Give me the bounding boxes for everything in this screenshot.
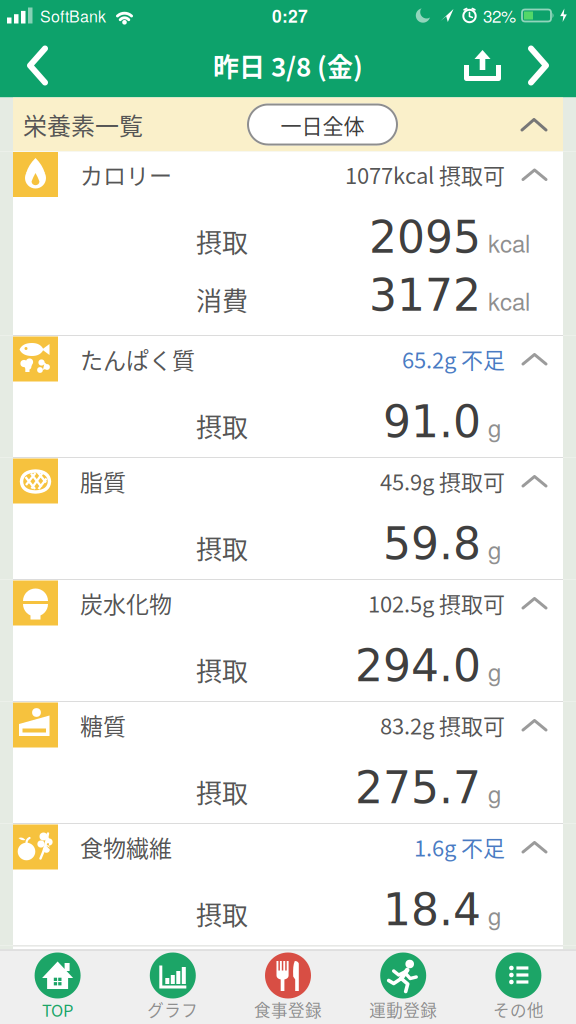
staticText: 一日全体: [280, 109, 364, 140]
staticText: 83.2g 摂取可: [380, 709, 505, 741]
staticText: 摂取: [196, 223, 248, 260]
staticText: その他: [493, 998, 544, 1021]
staticText: 32%: [483, 3, 516, 28]
button[interactable]: 次の日: [513, 45, 576, 85]
button[interactable]: TOP: [0, 949, 115, 1024]
button[interactable]: 運動登録: [346, 949, 461, 1024]
staticText: カロリー: [80, 158, 172, 191]
staticText: 栄養素一覧: [23, 107, 143, 142]
staticText: 91.0: [383, 396, 481, 448]
button[interactable]: 一日全体: [247, 103, 398, 145]
button[interactable]: 食物繊維: [13, 824, 563, 870]
staticText: 食事登録: [254, 998, 322, 1021]
button[interactable]: その他: [461, 949, 576, 1024]
staticText: 59.8: [383, 518, 481, 570]
staticText: g: [488, 776, 501, 810]
staticText: 摂取: [196, 773, 248, 811]
button[interactable]: 脂質: [13, 458, 563, 504]
staticText: kcal: [488, 283, 530, 318]
staticText: g: [488, 898, 501, 932]
staticText: 昨日 3/8 (金): [213, 47, 363, 84]
staticText: 275.7: [355, 762, 481, 814]
staticText: 18.4: [383, 884, 481, 936]
staticText: SoftBank: [40, 4, 106, 27]
staticText: 1077kcal 摂取可: [345, 159, 505, 190]
staticText: g: [488, 654, 501, 688]
staticText: 食物繊維: [80, 830, 172, 864]
staticText: 運動登録: [369, 998, 437, 1021]
staticText: たんぱく質: [80, 342, 195, 376]
button[interactable]: カロリー: [13, 151, 563, 197]
staticText: g: [488, 410, 501, 444]
staticText: 炭水化物: [80, 586, 172, 620]
button[interactable]: 食事登録: [230, 949, 346, 1024]
button[interactable]: グラフ: [115, 949, 230, 1024]
button[interactable]: 炭水化物: [13, 580, 563, 626]
staticText: 65.2g 不足: [402, 343, 505, 375]
button[interactable]: たんぱく質: [13, 336, 563, 382]
staticText: 45.9g 摂取可: [380, 465, 505, 497]
button[interactable]: 前の日: [0, 45, 69, 85]
staticText: 摂取: [196, 407, 248, 445]
staticText: 1.6g 不足: [414, 831, 505, 863]
button[interactable]: 閉じる: [520, 118, 563, 131]
staticText: 0:27: [272, 3, 308, 28]
staticText: 脂質: [80, 464, 126, 498]
button[interactable]: 共有: [452, 50, 513, 81]
staticText: 102.5g 摂取可: [368, 587, 505, 619]
staticText: g: [488, 532, 501, 566]
staticText: 294.0: [355, 640, 481, 692]
staticText: 摂取: [196, 895, 248, 933]
staticText: 摂取: [196, 651, 248, 689]
button[interactable]: 糖質: [13, 702, 563, 748]
staticText: 2095: [369, 212, 481, 263]
staticText: 3172: [369, 270, 481, 321]
staticText: 摂取: [196, 529, 248, 567]
staticText: kcal: [488, 225, 530, 260]
staticText: グラフ: [147, 998, 198, 1021]
staticText: 消費: [196, 281, 248, 318]
staticText: TOP: [42, 998, 73, 1021]
staticText: 糖質: [80, 708, 126, 742]
